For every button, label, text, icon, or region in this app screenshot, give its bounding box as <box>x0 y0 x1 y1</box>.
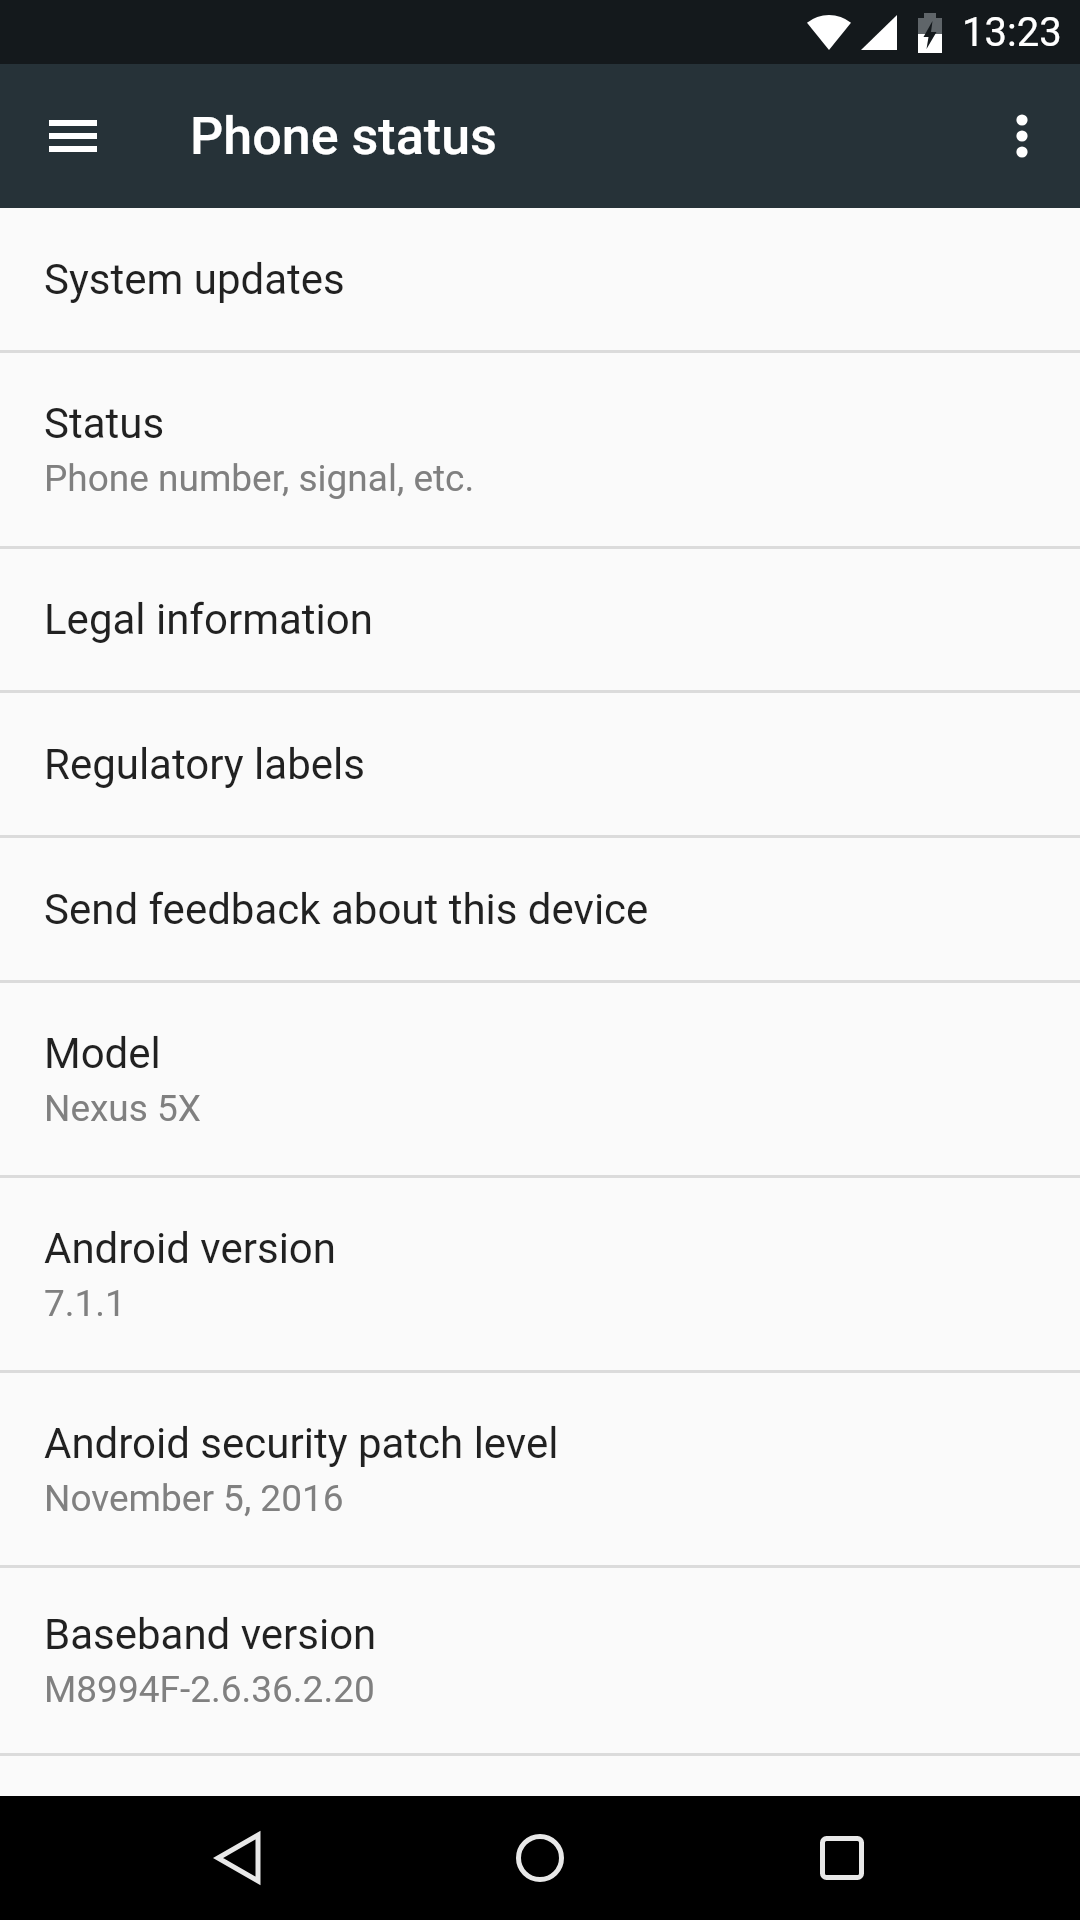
staticText: Send feedback about this device <box>44 885 649 934</box>
staticText: Status <box>44 399 165 448</box>
button[interactable] <box>25 88 121 184</box>
staticText: November 5, 2016 <box>44 1477 344 1520</box>
staticText: Legal information <box>44 595 373 644</box>
staticText: Phone number, signal, etc. <box>44 457 475 500</box>
button[interactable]: Android security patch level <box>0 1373 1080 1565</box>
button[interactable]: Send feedback about this device <box>0 838 1080 980</box>
button[interactable]: Model <box>0 983 1080 1175</box>
button[interactable]: Status <box>0 353 1080 546</box>
button[interactable] <box>190 1810 286 1906</box>
button[interactable]: System updates <box>0 208 1080 350</box>
staticText: Android version <box>44 1224 336 1273</box>
staticText: Baseband version <box>44 1610 377 1659</box>
button[interactable]: Baseband version <box>0 1568 1080 1753</box>
staticText: Regulatory labels <box>44 740 365 789</box>
staticText: Phone status <box>190 106 497 167</box>
staticText: 13:23 <box>962 9 1062 56</box>
button[interactable] <box>990 104 1054 168</box>
staticText: System updates <box>44 255 345 304</box>
staticText: 7.1.1 <box>44 1282 126 1325</box>
staticText: Nexus 5X <box>44 1087 202 1130</box>
button[interactable] <box>794 1810 890 1906</box>
button[interactable]: Android version <box>0 1178 1080 1370</box>
staticText: M8994F-2.6.36.2.20 <box>44 1668 375 1711</box>
button[interactable]: Regulatory labels <box>0 693 1080 835</box>
staticText: Model <box>44 1029 161 1078</box>
staticText: Android security patch level <box>44 1419 559 1468</box>
button[interactable] <box>492 1810 588 1906</box>
button[interactable]: Legal information <box>0 549 1080 690</box>
